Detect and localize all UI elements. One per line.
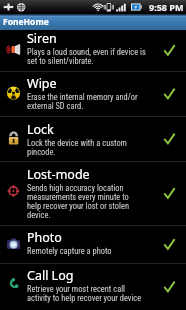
staticText: Siren bbox=[27, 30, 57, 47]
staticText: Photo bbox=[27, 229, 62, 246]
staticText: Plays a loud sound, even if device is se… bbox=[27, 47, 146, 66]
button[interactable]: Wipe bbox=[0, 72, 186, 116]
staticText: Sends high accuracy location measurement… bbox=[27, 183, 129, 220]
staticText: Lost-mode bbox=[27, 166, 90, 183]
staticText: 9:58 PM bbox=[149, 1, 184, 13]
staticText: Retrieve your most recent call activity … bbox=[27, 284, 142, 303]
staticText: Lock bbox=[27, 121, 54, 138]
button[interactable]: Lock bbox=[0, 117, 186, 161]
staticText: FoneHome bbox=[3, 16, 49, 28]
button[interactable]: Lost-mode bbox=[0, 162, 186, 225]
staticText: Call Log bbox=[27, 267, 74, 284]
staticText: Remotely capture a photo bbox=[27, 246, 112, 256]
staticText: Erase the internal memory and/or externa… bbox=[27, 92, 138, 111]
button[interactable]: Call Log bbox=[0, 264, 186, 310]
button[interactable]: Siren bbox=[0, 30, 186, 71]
staticText: Wipe bbox=[27, 75, 57, 92]
staticText: Lock the device with a custom pincode. bbox=[27, 138, 127, 157]
button[interactable]: Photo bbox=[0, 226, 186, 263]
